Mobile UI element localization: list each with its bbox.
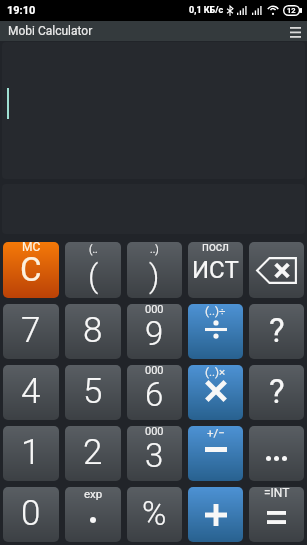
staticText: 7 — [21, 310, 41, 351]
button[interactable]: 5 — [65, 365, 121, 420]
staticText: 000 — [145, 426, 164, 438]
staticText: ..) — [150, 244, 159, 256]
button[interactable]: 8 — [65, 304, 121, 359]
staticText: 0,1 КБ/с — [189, 5, 224, 16]
staticText: 0 — [21, 493, 41, 534]
staticText: exp — [84, 487, 103, 500]
staticText: 2 — [83, 432, 103, 473]
staticText: (..)÷ — [205, 304, 226, 317]
staticText: 000 — [145, 365, 164, 377]
button[interactable] — [2, 42, 305, 179]
staticText: 6 — [145, 375, 164, 414]
staticText: 4 — [21, 371, 41, 412]
staticText: ) — [149, 257, 160, 295]
staticText: посл — [202, 242, 229, 254]
button[interactable]: Divide — [188, 304, 243, 359]
button[interactable]: Menu — [283, 21, 307, 41]
staticText: % — [142, 494, 167, 533]
button[interactable]: 000 — [127, 304, 182, 359]
staticText: 12 — [287, 6, 296, 15]
button[interactable]: Close bracket — [127, 242, 182, 298]
staticText: MC — [22, 242, 41, 254]
staticText: (.. — [89, 244, 98, 256]
button[interactable]: Plus — [188, 487, 243, 542]
button[interactable]: History — [188, 242, 243, 298]
staticText: C — [20, 250, 42, 289]
button[interactable]: Equals — [249, 487, 304, 542]
button[interactable]: 000 — [127, 426, 182, 481]
button[interactable]: 1 — [3, 426, 59, 481]
staticText: ИСТ — [192, 256, 239, 284]
button[interactable]: 0 — [3, 487, 59, 542]
staticText: (..)× — [205, 365, 226, 378]
staticText: ( — [88, 257, 99, 295]
button[interactable]: Decimal point — [65, 487, 121, 542]
button[interactable]: 000 — [127, 365, 182, 420]
button[interactable]: Help — [249, 304, 304, 359]
button[interactable]: Minus — [188, 426, 243, 481]
staticText: =INT — [264, 487, 290, 500]
staticText: 000 — [145, 304, 164, 316]
staticText: 5 — [83, 371, 103, 412]
button[interactable]: Backspace — [249, 242, 304, 298]
staticText: 19:10 — [7, 4, 36, 17]
staticText: ? — [269, 372, 285, 411]
staticText: ? — [269, 311, 285, 350]
button[interactable]: 7 — [3, 304, 59, 359]
staticText: 9 — [145, 314, 164, 353]
button[interactable]: Help — [249, 365, 304, 420]
button[interactable]: More — [249, 426, 304, 481]
button[interactable]: 4 — [3, 365, 59, 420]
staticText: 8 — [83, 310, 103, 351]
button[interactable]: 2 — [65, 426, 121, 481]
button[interactable]: Clear — [3, 242, 59, 298]
button[interactable]: Open bracket — [65, 242, 121, 298]
button[interactable]: Multiply — [188, 365, 243, 420]
staticText: 3 — [145, 436, 164, 475]
button[interactable]: % — [127, 487, 182, 542]
staticText: 1 — [21, 432, 41, 473]
staticText: +/− — [207, 426, 225, 439]
staticText: Mobi Calculator — [8, 24, 93, 38]
